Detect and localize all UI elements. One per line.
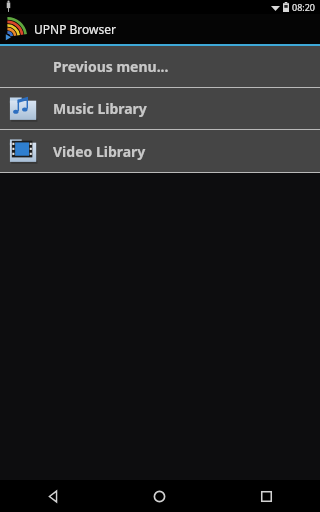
button[interactable]: Music Library [0,88,320,129]
staticText: UPNP Browser [34,21,116,37]
staticText: Previous menu... [53,57,169,76]
button[interactable]: Video Library [0,130,320,172]
staticText: Video Library [53,142,146,161]
button[interactable]: Previous menu... [0,46,320,87]
staticText: Music Library [53,99,147,118]
button[interactable]: Back [0,480,106,512]
button[interactable]: Home [106,480,213,512]
button[interactable]: Recent apps [213,480,320,512]
staticText: 08:20 [292,1,316,13]
